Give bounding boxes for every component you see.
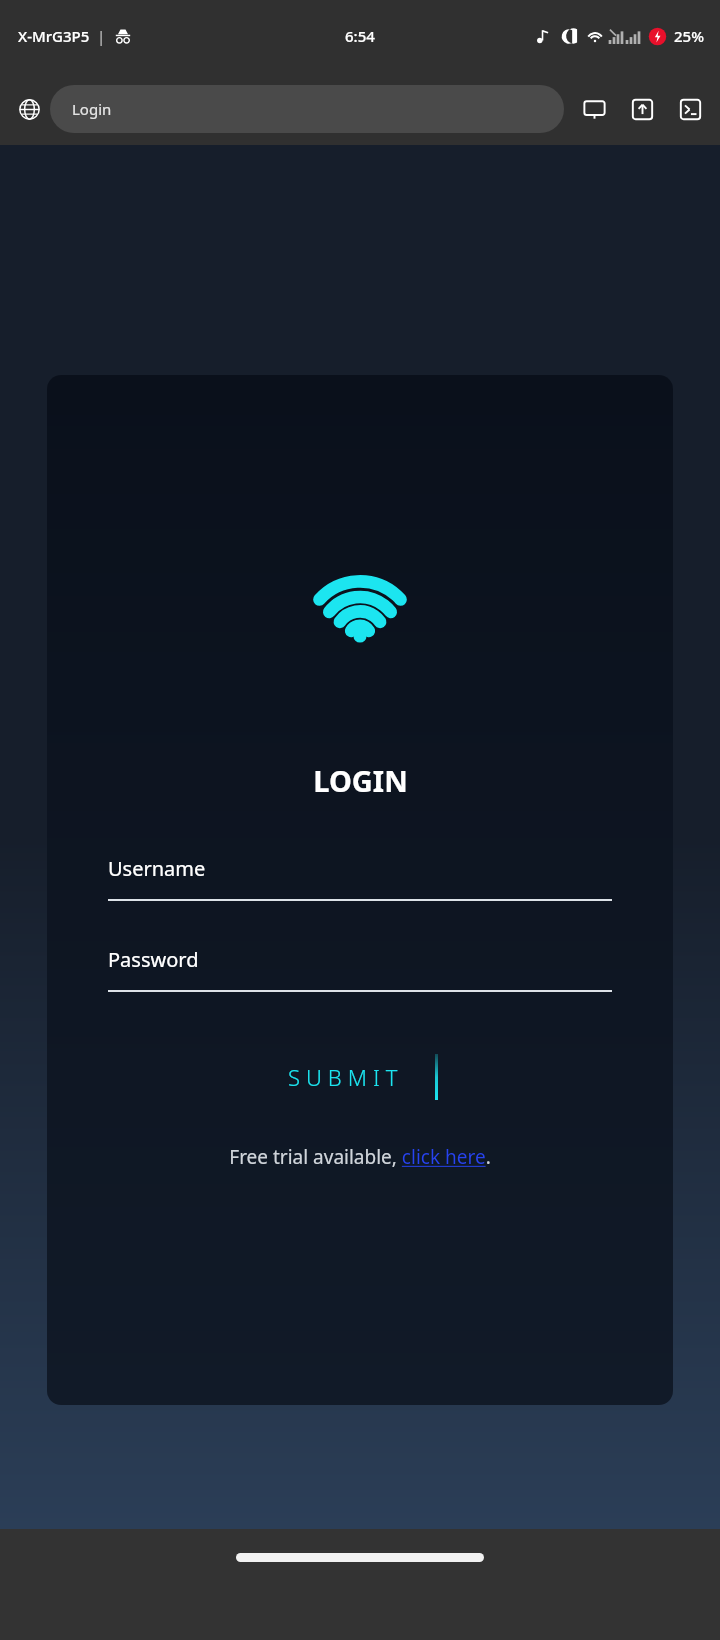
- button[interactable]: Desktop site: [574, 89, 614, 129]
- staticText: 6:54: [345, 26, 375, 46]
- button[interactable]: Password: [108, 946, 612, 992]
- staticText: Username: [108, 855, 206, 882]
- staticText: 25%: [674, 26, 704, 46]
- staticText: X-MrG3P5: [18, 26, 90, 46]
- button[interactable]: Login: [50, 85, 564, 133]
- button[interactable]: Share: [622, 89, 662, 129]
- button[interactable]: Username: [108, 855, 612, 901]
- staticText: Password: [108, 946, 199, 973]
- button[interactable]: Console: [670, 89, 710, 129]
- button[interactable]: Free trial available, click here.: [221, 1140, 499, 1174]
- button[interactable]: Site info: [12, 92, 46, 126]
- staticText: Free trial available, click here.: [229, 1144, 491, 1170]
- staticText: SUBMIT: [288, 1062, 404, 1092]
- button[interactable]: SUBMIT: [282, 1058, 410, 1096]
- staticText: LOGIN: [313, 761, 408, 800]
- staticText: |: [97, 26, 106, 46]
- staticText: Login: [72, 99, 112, 119]
